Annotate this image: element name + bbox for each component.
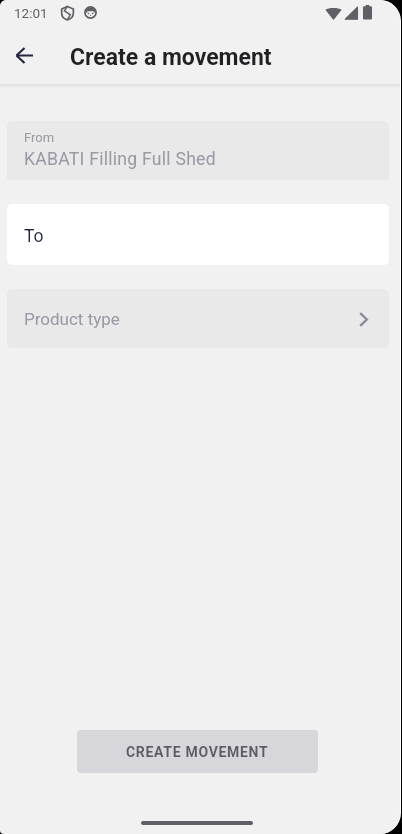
button[interactable]: To bbox=[7, 204, 389, 265]
staticText: CREATE MOVEMENT bbox=[126, 744, 269, 760]
staticText: Create a movement bbox=[70, 44, 272, 71]
staticText: KABATI Filling Full Shed bbox=[24, 149, 216, 170]
staticText: To bbox=[24, 226, 44, 247]
staticText: Product type bbox=[24, 309, 120, 329]
button[interactable]: Back bbox=[8, 39, 40, 71]
staticText: 12:01 bbox=[14, 5, 48, 21]
button[interactable]: Product type bbox=[7, 289, 389, 348]
staticText: From bbox=[24, 130, 55, 145]
button[interactable]: From bbox=[7, 121, 389, 180]
button[interactable]: CREATE MOVEMENT bbox=[77, 730, 318, 773]
